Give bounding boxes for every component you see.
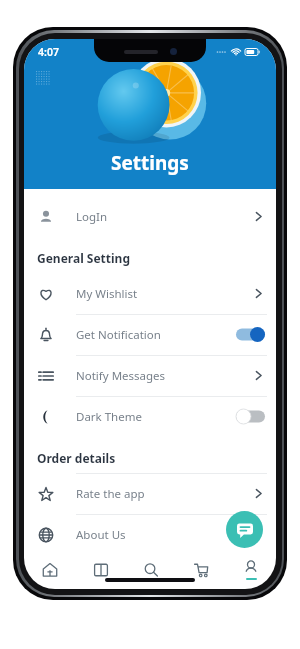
button[interactable]: Cart (176, 555, 226, 585)
button[interactable]: Notify Messages (24, 355, 276, 396)
button[interactable]: Open chat (226, 511, 263, 548)
staticText: General Setting (37, 250, 130, 266)
button[interactable]: Home (24, 555, 75, 585)
staticText: Get Notification (76, 327, 161, 343)
button[interactable]: Rate the app (24, 473, 276, 514)
staticText: My Wishlist (76, 286, 138, 302)
button[interactable]: LogIn (24, 196, 276, 237)
button[interactable]: Profile (226, 555, 276, 585)
staticText: Notify Messages (76, 368, 166, 384)
button[interactable]: Get Notification (24, 314, 276, 355)
staticText: About Us (76, 527, 126, 543)
button[interactable]: Dark Theme (24, 396, 276, 437)
staticText: 4:07 (38, 45, 59, 59)
staticText: LogIn (76, 209, 108, 225)
staticText: Order details (37, 450, 116, 466)
button[interactable]: Search (126, 555, 176, 585)
button[interactable]: My Wishlist (24, 273, 276, 314)
staticText: Rate the app (76, 486, 145, 502)
button[interactable]: About Us (24, 514, 276, 555)
staticText: Settings (111, 150, 189, 176)
staticText: Dark Theme (76, 409, 142, 425)
button[interactable]: Catalog (75, 555, 126, 585)
